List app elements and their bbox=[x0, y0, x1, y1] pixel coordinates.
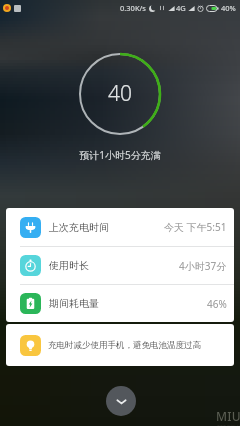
staticText: 46% bbox=[207, 297, 227, 311]
staticText: 充电时减少使用手机，避免电池温度过高 bbox=[48, 340, 201, 351]
button[interactable]: Expand details bbox=[106, 386, 136, 416]
button[interactable]: 使用时长 bbox=[6, 247, 234, 284]
button[interactable]: 上次充电时间 bbox=[6, 208, 234, 246]
staticText: 40 bbox=[108, 79, 132, 108]
staticText: 40% bbox=[221, 3, 236, 13]
staticText: 预计1小时5分充满 bbox=[0, 148, 240, 162]
staticText: 4小时37分 bbox=[179, 259, 227, 273]
staticText: 使用时长 bbox=[49, 259, 89, 272]
button[interactable]: 期间耗电量 bbox=[6, 285, 234, 322]
staticText: 0.30K/s bbox=[120, 3, 146, 13]
staticText: 4G bbox=[176, 3, 186, 13]
staticText: 期间耗电量 bbox=[49, 297, 99, 310]
button[interactable]: 充电时减少使用手机，避免电池温度过高 bbox=[6, 324, 234, 366]
staticText: www.miui.com bbox=[217, 423, 240, 426]
staticText: MIUI bbox=[216, 408, 240, 424]
staticText: 上次充电时间 bbox=[49, 221, 109, 234]
staticText: 今天 下午5:51 bbox=[164, 220, 227, 234]
